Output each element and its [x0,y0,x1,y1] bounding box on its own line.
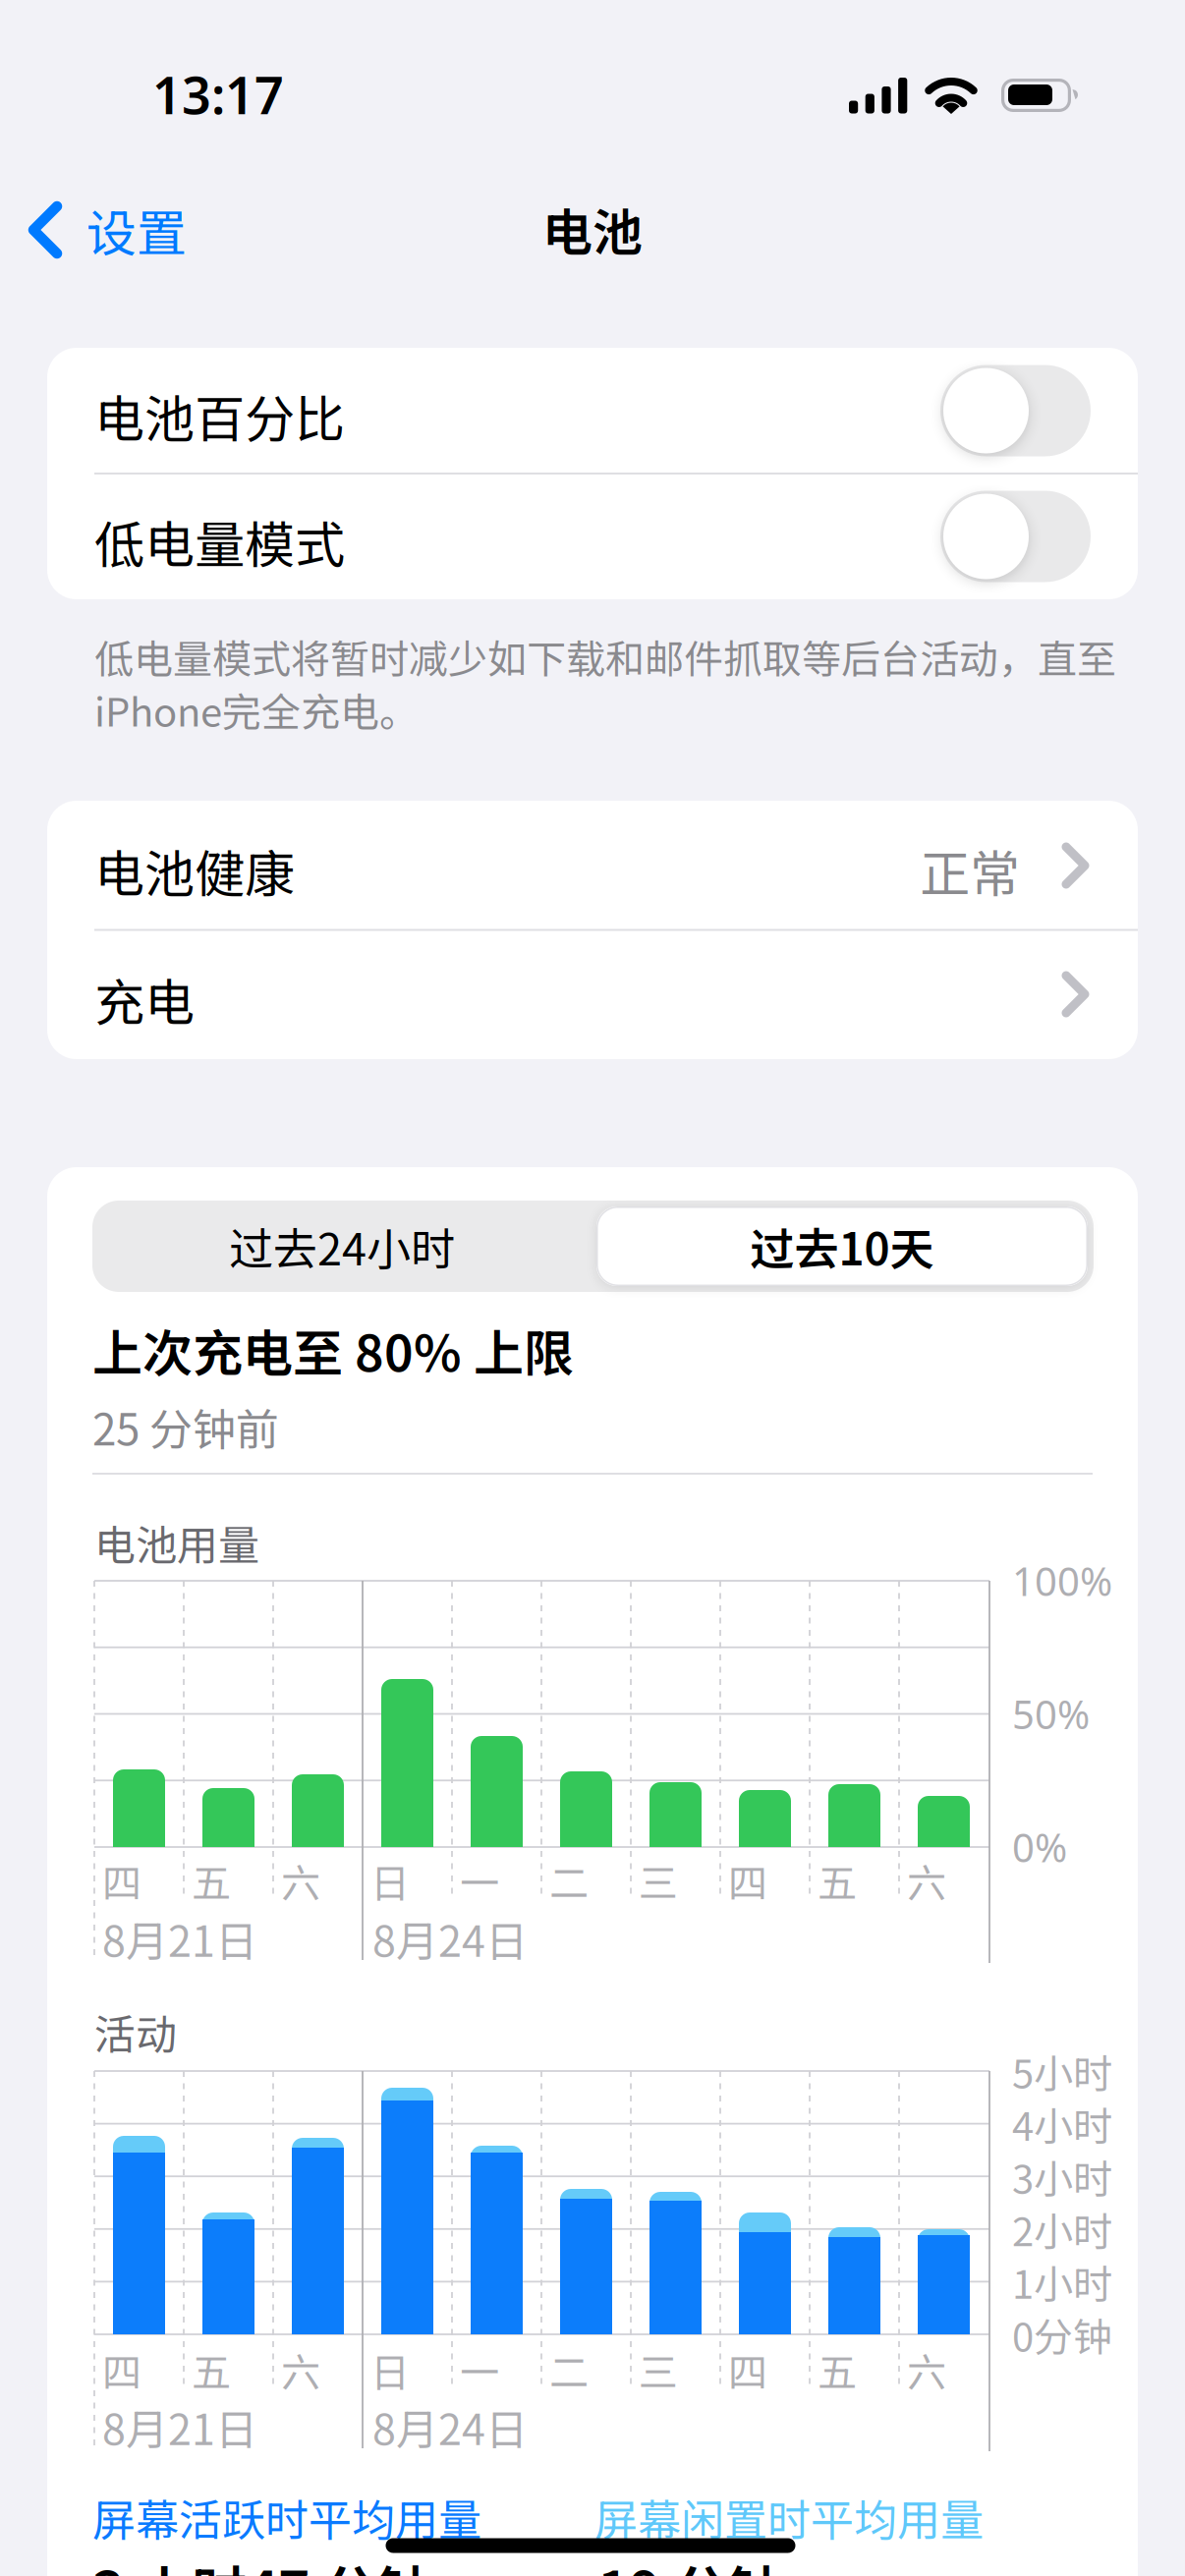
staticText: 电池用量 [94,1513,259,1572]
staticText: 正常 [920,834,1020,907]
staticText: 二 [549,1852,589,1909]
button[interactable]: 过去24小时 [96,1201,588,1292]
button[interactable]: 过去10天 [596,1206,1088,1286]
staticText: 3 小时47 分钟 [92,2548,432,2576]
staticText: 8月21日 [102,1908,257,1969]
staticText: 五 [192,2341,231,2398]
staticText: 5小时 [1012,2043,1112,2099]
staticText: 8月24日 [372,1908,528,1969]
staticText: 屏幕闲置时平均用量 [594,2486,984,2548]
staticText: 上次充电至 80% 上限 [92,1314,574,1386]
staticText: 设置 [86,194,187,266]
staticText: 过去24小时 [229,1214,455,1278]
staticText: 六 [907,1852,946,1909]
staticText: 低电量模式 [94,505,345,578]
staticText: 六 [907,2341,946,2398]
staticText: 四 [728,1852,767,1909]
staticText: 0分钟 [1012,2306,1112,2363]
staticText: 四 [102,2341,141,2398]
staticText: 1小时 [1012,2253,1112,2310]
staticText: 六 [281,1852,320,1909]
button[interactable]: 充电 [47,930,1138,1059]
staticText: iPhone完全充电。 [94,681,419,738]
staticText: 电池健康 [94,834,295,907]
staticText: 19 分钟 [597,2548,783,2576]
staticText: 100% [1012,1555,1112,1607]
staticText: 二 [549,2341,589,2398]
staticText: 四 [102,1852,141,1909]
staticText: 日 [370,2341,410,2398]
staticText: 0% [1012,1821,1067,1873]
button[interactable]: 设置 [27,191,223,269]
staticText: 8月21日 [102,2396,257,2457]
staticText: 50% [1012,1688,1090,1740]
staticText: 13:17 [152,60,284,128]
staticText: 活动 [94,2002,177,2062]
staticText: 四 [728,2341,767,2398]
staticText: 一 [460,2341,499,2398]
staticText: 六 [281,2341,320,2398]
staticText: 低电量模式将暂时减少如下载和邮件抓取等后台活动，直至 [94,628,1116,685]
staticText: 25 分钟前 [92,1395,279,1458]
staticText: 五 [818,1852,857,1909]
button[interactable]: 电池健康 [47,801,1138,930]
staticText: 三 [639,1852,678,1909]
button[interactable]: 低电量模式 [940,491,1091,582]
staticText: 4小时 [1012,2095,1112,2152]
staticText: 过去10天 [750,1214,934,1278]
button[interactable]: 电池百分比 [940,365,1091,456]
staticText: 屏幕活跃时平均用量 [92,2486,481,2548]
staticText: 日 [370,1852,410,1909]
staticText: 五 [192,1852,231,1909]
staticText: 三 [639,2341,678,2398]
staticText: 8月24日 [372,2396,528,2457]
staticText: 电池百分比 [94,379,345,452]
staticText: 五 [818,2341,857,2398]
staticText: 电池 [542,193,643,265]
staticText: 2小时 [1012,2201,1112,2257]
staticText: 充电 [94,963,195,1035]
staticText: 3小时 [1012,2148,1112,2205]
staticText: 一 [460,1852,499,1909]
